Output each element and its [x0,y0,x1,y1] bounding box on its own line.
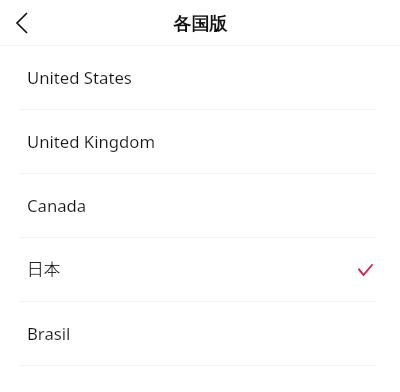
button[interactable]: United States [0,46,400,109]
button[interactable]: Brasil [0,302,400,365]
staticText: United States [27,66,132,89]
staticText: Brasil [27,322,71,345]
button[interactable]: 日本 [0,238,400,301]
button[interactable]: Canada [0,174,400,237]
staticText: 各国版 [173,13,227,36]
button[interactable]: Back [1,2,43,44]
staticText: 日本 [27,259,61,280]
staticText: Canada [27,194,87,217]
staticText: United Kingdom [27,130,156,153]
button[interactable]: United Kingdom [0,110,400,173]
